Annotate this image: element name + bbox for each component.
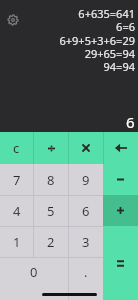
staticText: 6 — [126, 112, 135, 132]
staticText: 6+635=641 — [78, 6, 135, 21]
staticText: 94=94 — [103, 59, 135, 74]
button[interactable]: 3 — [69, 227, 103, 257]
button[interactable]: 0 — [0, 258, 68, 300]
button[interactable]: 7 — [0, 164, 33, 195]
button[interactable]: 1 — [0, 227, 33, 257]
button[interactable]: Divide — [34, 132, 68, 164]
button[interactable]: 5 — [34, 196, 68, 226]
button[interactable]: Backspace — [104, 132, 138, 164]
staticText: . — [84, 263, 88, 281]
staticText: 7 — [13, 171, 21, 189]
staticText: 29+65=94 — [84, 46, 135, 61]
button[interactable]: Settings — [4, 11, 21, 28]
button[interactable]: c — [0, 132, 33, 164]
staticText: 5 — [47, 202, 55, 220]
staticText: c — [13, 139, 20, 157]
staticText: 3 — [82, 233, 90, 251]
staticText: 8 — [47, 171, 55, 189]
staticText: 6+9+5+3+6=29 — [59, 33, 135, 48]
button[interactable]: Minus — [103, 164, 138, 195]
button[interactable]: 6 — [69, 196, 103, 226]
button[interactable]: 9 — [69, 164, 103, 195]
staticText: 6=6 — [116, 19, 135, 34]
staticText: 4 — [13, 202, 21, 220]
button[interactable]: 8 — [34, 164, 68, 195]
staticText: 1 — [13, 233, 21, 251]
button[interactable]: Equals — [103, 226, 138, 300]
button[interactable]: Plus — [103, 195, 138, 226]
button[interactable]: . — [69, 258, 103, 300]
button[interactable]: 4 — [0, 196, 33, 226]
staticText: 0 — [30, 263, 38, 281]
staticText: 9 — [82, 171, 90, 189]
staticText: 2 — [47, 233, 55, 251]
button[interactable]: 2 — [34, 227, 68, 257]
staticText: 6 — [82, 202, 90, 220]
button[interactable]: Multiply — [69, 132, 103, 164]
